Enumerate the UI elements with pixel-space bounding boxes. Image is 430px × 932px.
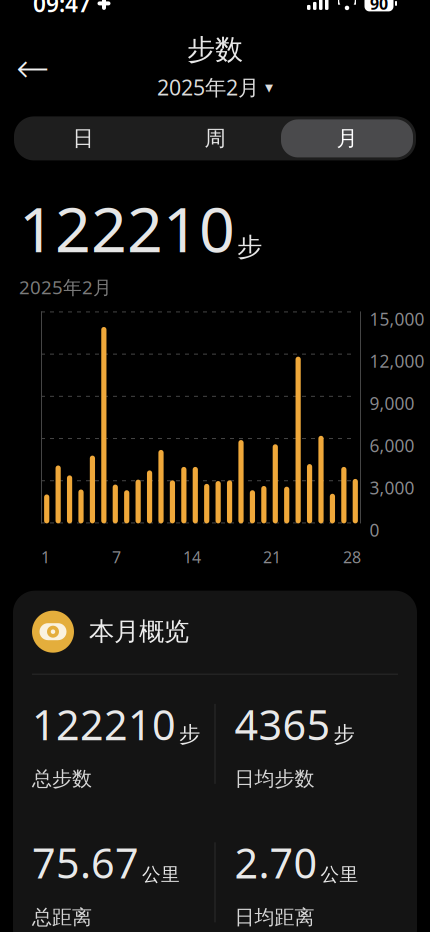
staticText: 09:47 bbox=[33, 0, 91, 18]
staticText: 步 bbox=[333, 721, 354, 748]
staticText: 月 bbox=[336, 125, 357, 151]
staticText: 步数 bbox=[187, 33, 243, 67]
staticText: 75.67 bbox=[32, 835, 139, 890]
staticText: 公里 bbox=[142, 863, 180, 886]
staticText: 122210 bbox=[32, 697, 176, 752]
staticText: 9,000 bbox=[369, 392, 414, 415]
staticText: 4365 bbox=[234, 697, 330, 752]
staticText: 日均距离 bbox=[234, 905, 314, 930]
staticText: 21 bbox=[263, 546, 281, 568]
staticText: 步 bbox=[237, 231, 262, 263]
staticText: 28 bbox=[343, 546, 361, 568]
staticText: 日均步数 bbox=[234, 767, 314, 791]
button[interactable]: 周 bbox=[149, 119, 281, 157]
staticText: ▾ bbox=[265, 78, 273, 96]
staticText: 12,000 bbox=[369, 350, 424, 373]
staticText: 15,000 bbox=[369, 307, 424, 330]
staticText: 总距离 bbox=[32, 905, 92, 930]
button[interactable]: 2025年2月 bbox=[149, 70, 281, 104]
staticText: 2025年2月 bbox=[19, 275, 112, 299]
staticText: 14 bbox=[183, 546, 201, 568]
staticText: 0 bbox=[369, 518, 379, 541]
button[interactable]: 月 bbox=[281, 119, 413, 157]
staticText: 122210 bbox=[19, 186, 235, 270]
button[interactable]: 返回 bbox=[10, 45, 56, 91]
staticText: 本月概览 bbox=[89, 616, 189, 647]
staticText: 3,000 bbox=[369, 476, 414, 499]
staticText: 日 bbox=[72, 125, 93, 151]
staticText: ← bbox=[16, 46, 50, 91]
staticText: 7 bbox=[112, 546, 121, 568]
staticText: 公里 bbox=[320, 863, 358, 886]
staticText: 1 bbox=[41, 546, 50, 568]
staticText: 总步数 bbox=[32, 767, 92, 791]
staticText: 90 bbox=[370, 0, 388, 14]
staticText: 2025年2月 bbox=[157, 73, 259, 101]
staticText: 2.70 bbox=[234, 835, 317, 890]
button[interactable]: 日 bbox=[17, 119, 149, 157]
staticText: 6,000 bbox=[369, 434, 414, 457]
staticText: 步 bbox=[179, 721, 200, 748]
staticText: 周 bbox=[204, 125, 225, 151]
